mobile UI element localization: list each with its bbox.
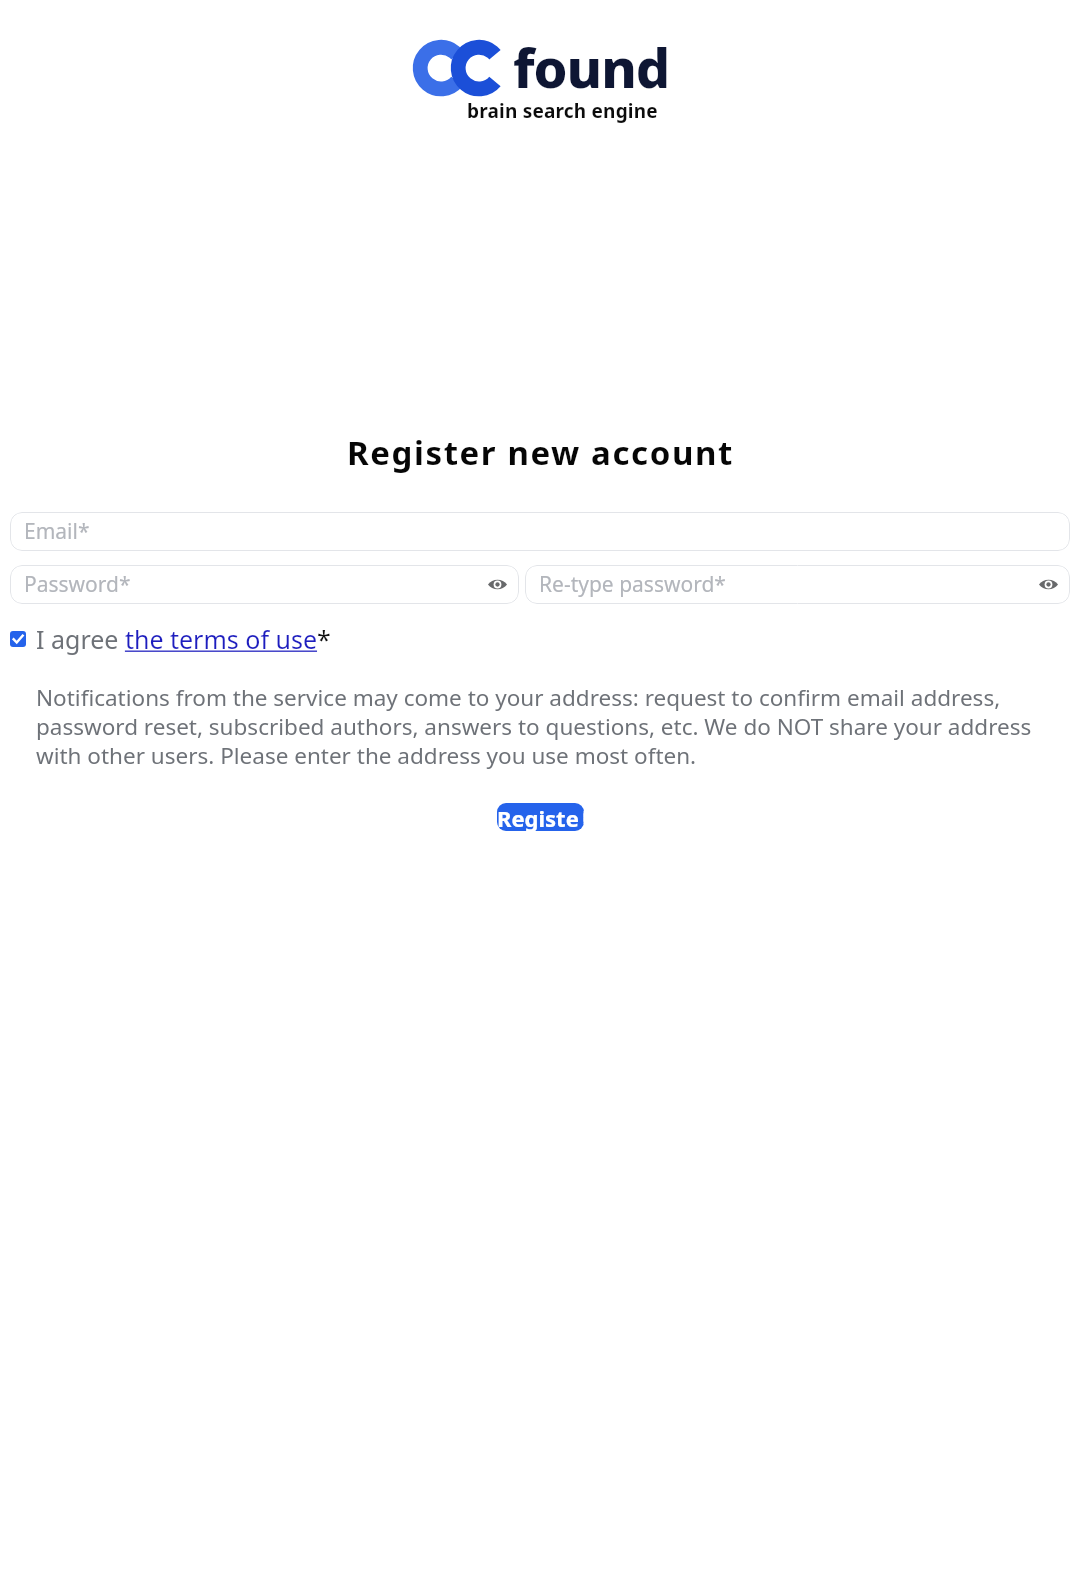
staticText: Re-type password* — [539, 570, 726, 599]
staticText: Notifications from the service may come … — [36, 682, 1066, 771]
staticText: Password* — [24, 570, 131, 599]
staticText: Email* — [24, 517, 90, 546]
button[interactable]: Re-type password* — [525, 565, 1070, 604]
button[interactable]: Show password — [488, 578, 507, 591]
staticText: brain search engine — [467, 98, 658, 124]
button[interactable]: Email* — [10, 512, 1070, 551]
staticText: I agree the terms of use* — [36, 622, 331, 656]
button[interactable]: Show password — [1039, 578, 1058, 591]
button[interactable]: I agree the terms of use* — [10, 622, 331, 656]
staticText: found — [513, 30, 670, 104]
button[interactable]: Register — [497, 803, 584, 831]
staticText: Register — [497, 803, 584, 831]
staticText: Register new account — [347, 430, 734, 475]
button[interactable]: Password* — [10, 565, 519, 604]
